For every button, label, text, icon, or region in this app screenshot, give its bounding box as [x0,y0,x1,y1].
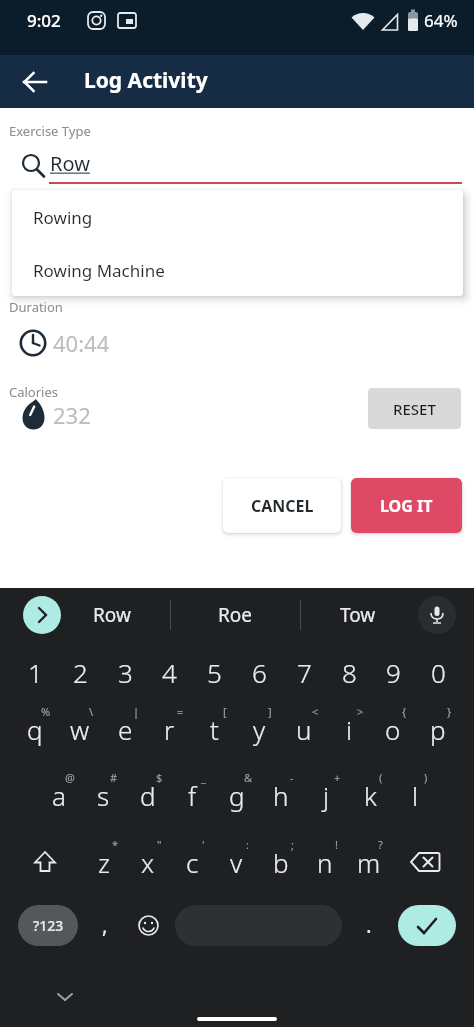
staticText: 1 [28,655,43,690]
staticText: Rowing Machine [33,259,165,282]
button[interactable]: Rowing [12,190,463,243]
staticText: j [323,778,330,813]
staticText: d [140,778,156,813]
button[interactable]: y [237,706,281,752]
staticText: n [317,845,333,880]
button[interactable]: Row [77,597,147,633]
staticText: & [244,770,253,785]
button[interactable]: o [371,706,415,752]
button[interactable]: p [416,706,460,752]
button[interactable]: l [393,772,437,818]
button[interactable]: 9 [371,649,415,695]
staticText: b [273,845,289,880]
button[interactable]: k [348,772,392,818]
staticText: Duration [9,298,63,316]
button[interactable]: 1 [13,649,57,695]
staticText: z [98,845,111,880]
button[interactable]: CANCEL [223,478,341,533]
staticText: 7 [297,655,312,690]
staticText: c [186,845,199,880]
staticText: Calories [9,383,59,401]
staticText: Log Activity [84,66,208,95]
button[interactable]: a [37,772,81,818]
button[interactable]: i [327,706,371,752]
staticText: = [177,704,184,719]
staticText: @ [65,770,75,785]
button[interactable]: . [355,905,383,946]
staticText: 64% [424,9,458,32]
button[interactable]: q [13,706,57,752]
button[interactable]: r [147,706,191,752]
button[interactable]: 0 [416,649,460,695]
button[interactable]: , [90,905,120,946]
staticText: < [312,704,319,719]
button[interactable]: 6 [237,649,281,695]
staticText: ] [268,704,272,719]
button[interactable]: RESET [368,388,461,429]
button[interactable]: g [215,772,259,818]
button[interactable]: m [347,839,391,885]
staticText: Rowing [33,206,93,229]
staticText: 232 [53,400,91,430]
staticText: i [346,712,353,747]
button[interactable]: x [126,839,170,885]
staticText: l [412,778,419,813]
staticText: | [133,704,140,719]
button[interactable]: t [192,706,236,752]
button[interactable] [12,59,58,105]
staticText: ( [379,770,383,785]
button[interactable]: c [170,839,214,885]
staticText: s [97,778,110,813]
staticText: t [210,712,219,747]
button[interactable]: s [81,772,125,818]
button[interactable]: 7 [282,649,326,695]
button[interactable] [23,596,61,634]
button[interactable] [418,596,456,634]
button[interactable]: 4 [147,649,191,695]
button[interactable]: e [103,706,147,752]
staticText: LOG IT [380,495,433,517]
button[interactable]: LOG IT [351,478,462,533]
button[interactable]: j [304,772,348,818]
button[interactable]: 8 [327,649,371,695]
staticText: w [70,712,90,747]
button[interactable]: Row [50,150,462,186]
staticText: v [230,845,243,880]
staticText: > [357,704,364,719]
staticText: % [41,704,51,719]
button[interactable]: d [126,772,170,818]
button[interactable]: n [303,839,347,885]
button[interactable] [175,905,342,946]
button[interactable] [402,839,448,885]
button[interactable]: 2 [58,649,102,695]
button[interactable]: ?123 [18,905,78,946]
staticText: [ [223,704,227,719]
staticText: 8 [342,655,357,690]
button[interactable]: v [214,839,258,885]
staticText: o [385,712,401,747]
button[interactable] [22,839,68,885]
staticText: , [102,911,108,940]
button[interactable]: Tow [323,597,393,633]
button[interactable]: u [282,706,326,752]
button[interactable]: w [58,706,102,752]
button[interactable]: f [170,772,214,818]
staticText: Row [93,602,131,628]
staticText: 4 [162,655,177,690]
staticText: 2 [73,655,88,690]
button[interactable]: z [82,839,126,885]
staticText: . [366,911,372,940]
staticText: $ [156,770,163,785]
button[interactable]: b [259,839,303,885]
button[interactable] [398,905,456,946]
staticText: " [157,837,162,852]
button[interactable] [132,905,164,946]
staticText: Exercise Type [9,122,91,140]
staticText: ' [202,837,205,852]
button[interactable]: Roe [200,597,270,633]
button[interactable]: Rowing Machine [12,243,463,296]
button[interactable]: h [259,772,303,818]
button[interactable]: 5 [192,649,236,695]
button[interactable]: 3 [103,649,147,695]
staticText: # [110,770,118,785]
